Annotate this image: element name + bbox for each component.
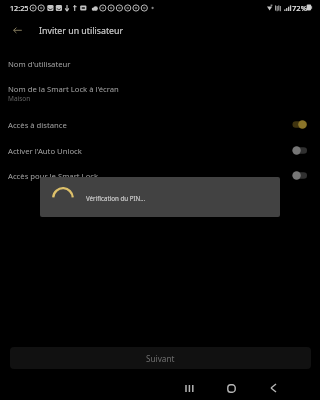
staticText: 72% — [292, 3, 307, 13]
button[interactable]: Suivant — [10, 347, 311, 369]
staticText: Activer l'Auto Unlock — [8, 146, 82, 156]
button[interactable]: Recent apps — [174, 378, 204, 398]
staticText: 12:25 — [10, 3, 29, 13]
staticText: Suivant — [146, 353, 175, 364]
staticText: Inviter un utilisateur — [39, 25, 124, 37]
staticText: Maison — [8, 94, 31, 103]
button[interactable]: Accès pour le Smart Lock — [0, 163, 320, 188]
button[interactable]: Accès à distance — [0, 112, 320, 137]
button[interactable]: Back — [7, 19, 28, 40]
staticText: Vérification du PIN... — [86, 194, 146, 202]
staticText: Nom de la Smart Lock à l'écran — [8, 84, 119, 94]
staticText: Accès à distance — [8, 120, 67, 130]
button[interactable]: Activer l'Auto Unlock — [0, 138, 320, 163]
staticText: Nom d'utilisateur — [8, 59, 71, 69]
button[interactable]: Back — [258, 378, 288, 398]
button[interactable]: Home — [216, 378, 246, 398]
staticText: Accès pour le Smart Lock — [8, 171, 99, 181]
